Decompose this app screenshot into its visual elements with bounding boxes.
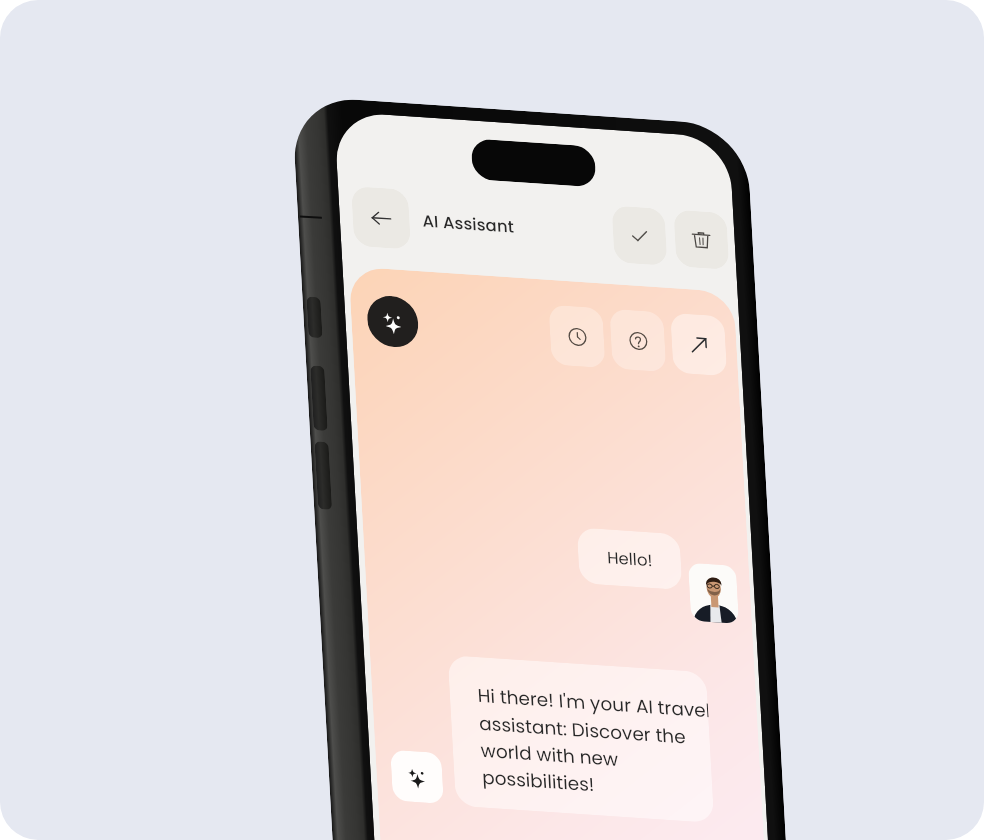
button[interactable]: Open [642, 288, 755, 401]
button[interactable]: Help [581, 283, 695, 397]
staticText: AI Assisant [411, 167, 526, 282]
button[interactable]: Hello! [550, 479, 709, 638]
button[interactable]: History [520, 279, 634, 393]
button[interactable]: AI [366, 726, 468, 828]
staticText: Hello! [596, 525, 664, 594]
staticText: Hi there! I'm your AI travel assistant: … [426, 575, 764, 840]
button[interactable]: Confirm [585, 181, 694, 290]
button[interactable]: Delete [646, 185, 756, 295]
button[interactable]: Hi there! I'm your AI travel assistant: … [376, 534, 785, 840]
button[interactable]: Assistant [342, 271, 444, 372]
button[interactable]: User avatar [661, 540, 766, 646]
button[interactable]: Back [323, 159, 439, 276]
